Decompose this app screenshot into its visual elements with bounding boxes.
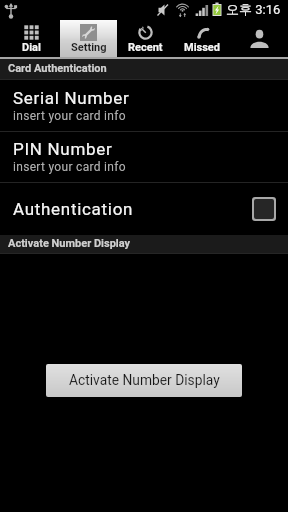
button[interactable]: Recent	[117, 20, 174, 57]
button[interactable]: Contacts	[231, 20, 288, 57]
staticText: Setting	[71, 41, 107, 54]
button[interactable]: Activate Number Display	[46, 364, 242, 397]
button[interactable]: Authentication	[0, 183, 288, 235]
staticText: Card Authentication	[8, 62, 107, 75]
staticText: Missed	[184, 41, 221, 54]
staticText: insert your card info	[13, 160, 126, 174]
button[interactable]: Missed	[174, 20, 231, 57]
staticText: Serial Number	[13, 88, 130, 108]
staticText: insert your card info	[13, 109, 126, 123]
staticText: Recent	[128, 41, 163, 54]
staticText: PIN Number	[13, 139, 113, 159]
staticText: Dial	[22, 41, 41, 54]
staticText: Activate Number Display	[69, 372, 220, 388]
staticText: Activate Number Display	[8, 237, 131, 250]
button[interactable]: Setting	[60, 20, 117, 57]
button[interactable]: PIN Number	[0, 132, 288, 182]
button[interactable]: Serial Number	[0, 80, 288, 131]
button[interactable]: Dial	[2, 20, 60, 57]
staticText: Authentication	[13, 199, 134, 219]
staticText: 오후 3:16	[226, 1, 281, 17]
